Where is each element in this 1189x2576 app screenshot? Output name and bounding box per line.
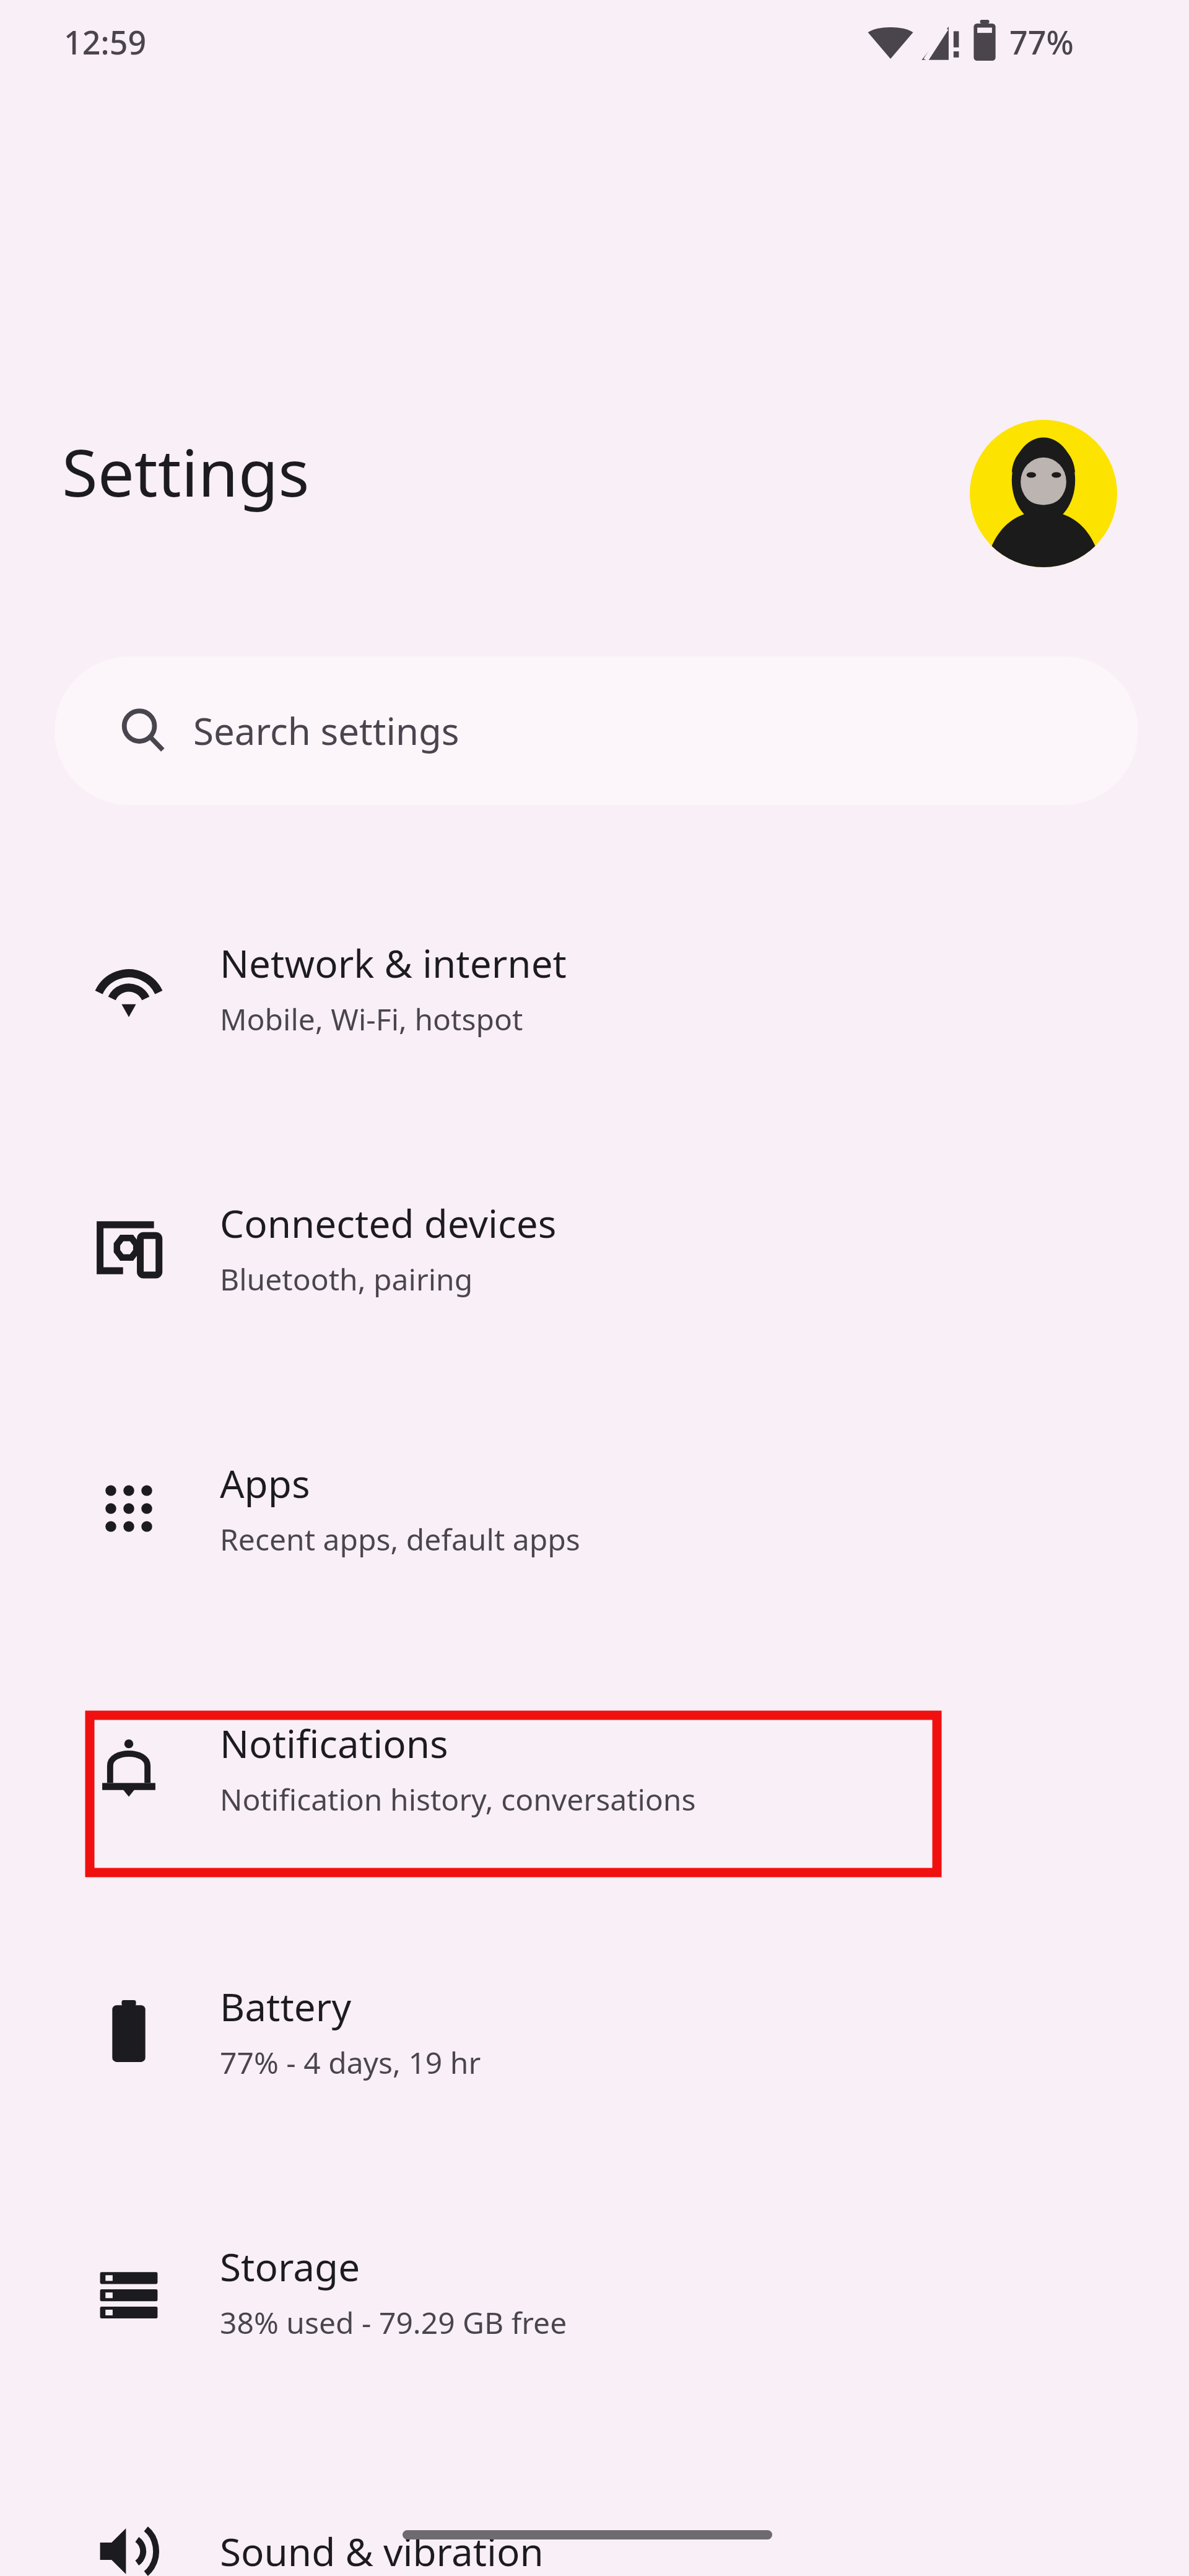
- staticText: Apps: [220, 1457, 310, 1509]
- staticText: Sound & vibration: [220, 2525, 544, 2576]
- staticText: Bluetooth, pairing: [220, 1259, 473, 1299]
- staticText: 77% - 4 days, 19 hr: [220, 2042, 481, 2082]
- staticText: Recent apps, default apps: [220, 1519, 580, 1559]
- button[interactable]: Battery: [37, 1954, 1152, 2108]
- staticText: Search settings: [193, 705, 459, 756]
- staticText: 12:59: [64, 20, 147, 64]
- staticText: 38% used - 79.29 GB free: [220, 2302, 567, 2343]
- button[interactable]: Storage: [37, 2214, 1152, 2369]
- button[interactable]: Connected devices: [37, 1170, 1152, 1325]
- button[interactable]: Apps: [37, 1430, 1152, 1585]
- staticText: Settings: [62, 427, 310, 516]
- button[interactable]: Search settings: [54, 656, 1138, 805]
- staticText: Storage: [220, 2240, 360, 2292]
- staticText: Notification history, conversations: [220, 1779, 696, 1819]
- button[interactable]: Account: [970, 420, 1117, 567]
- button[interactable]: Sound & vibration: [37, 2474, 1152, 2576]
- button[interactable]: Network & internet: [37, 910, 1152, 1065]
- staticText: Battery: [220, 1980, 352, 2032]
- staticText: Mobile, Wi-Fi, hotspot: [220, 999, 523, 1039]
- staticText: Connected devices: [220, 1197, 557, 1249]
- staticText: Network & internet: [220, 937, 567, 989]
- staticText: 77%: [1009, 20, 1074, 64]
- button[interactable]: Notifications: [37, 1690, 1152, 1845]
- staticText: Notifications: [220, 1717, 448, 1769]
